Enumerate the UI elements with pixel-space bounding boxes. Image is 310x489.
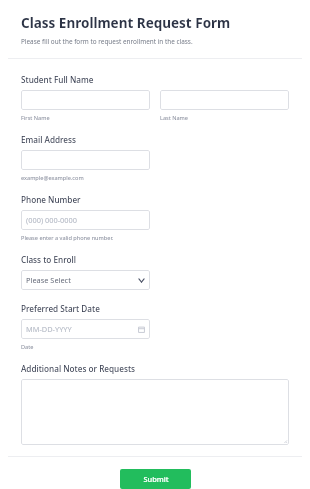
button[interactable]: Please Select xyxy=(21,270,150,290)
button[interactable]: Submit xyxy=(120,469,191,489)
staticText: Student Full Name xyxy=(21,74,94,85)
staticText: MM-DD-YYYY xyxy=(26,324,72,334)
staticText: Class to Enroll xyxy=(21,254,76,265)
button[interactable] xyxy=(160,90,289,110)
staticText: Please Select xyxy=(26,275,71,285)
button[interactable] xyxy=(21,379,289,445)
staticText: Please fill out the form to request enro… xyxy=(21,37,193,46)
staticText: Last Name xyxy=(160,114,188,122)
button[interactable] xyxy=(21,150,150,170)
staticText: Date xyxy=(21,343,34,351)
staticText: Please enter a valid phone number. xyxy=(21,234,114,242)
button[interactable] xyxy=(21,90,150,110)
staticText: Email Address xyxy=(21,134,77,145)
button[interactable]: MM-DD-YYYY xyxy=(21,319,150,339)
staticText: First Name xyxy=(21,114,50,122)
staticText: Class Enrollment Request Form xyxy=(21,14,231,32)
button[interactable]: (000) 000-0000 xyxy=(21,210,150,230)
staticText: Submit xyxy=(143,474,169,484)
staticText: Preferred Start Date xyxy=(21,303,100,314)
staticText: example@example.com xyxy=(21,174,84,182)
staticText: Phone Number xyxy=(21,194,81,205)
staticText: Additional Notes or Requests xyxy=(21,363,136,374)
staticText: (000) 000-0000 xyxy=(26,215,78,225)
